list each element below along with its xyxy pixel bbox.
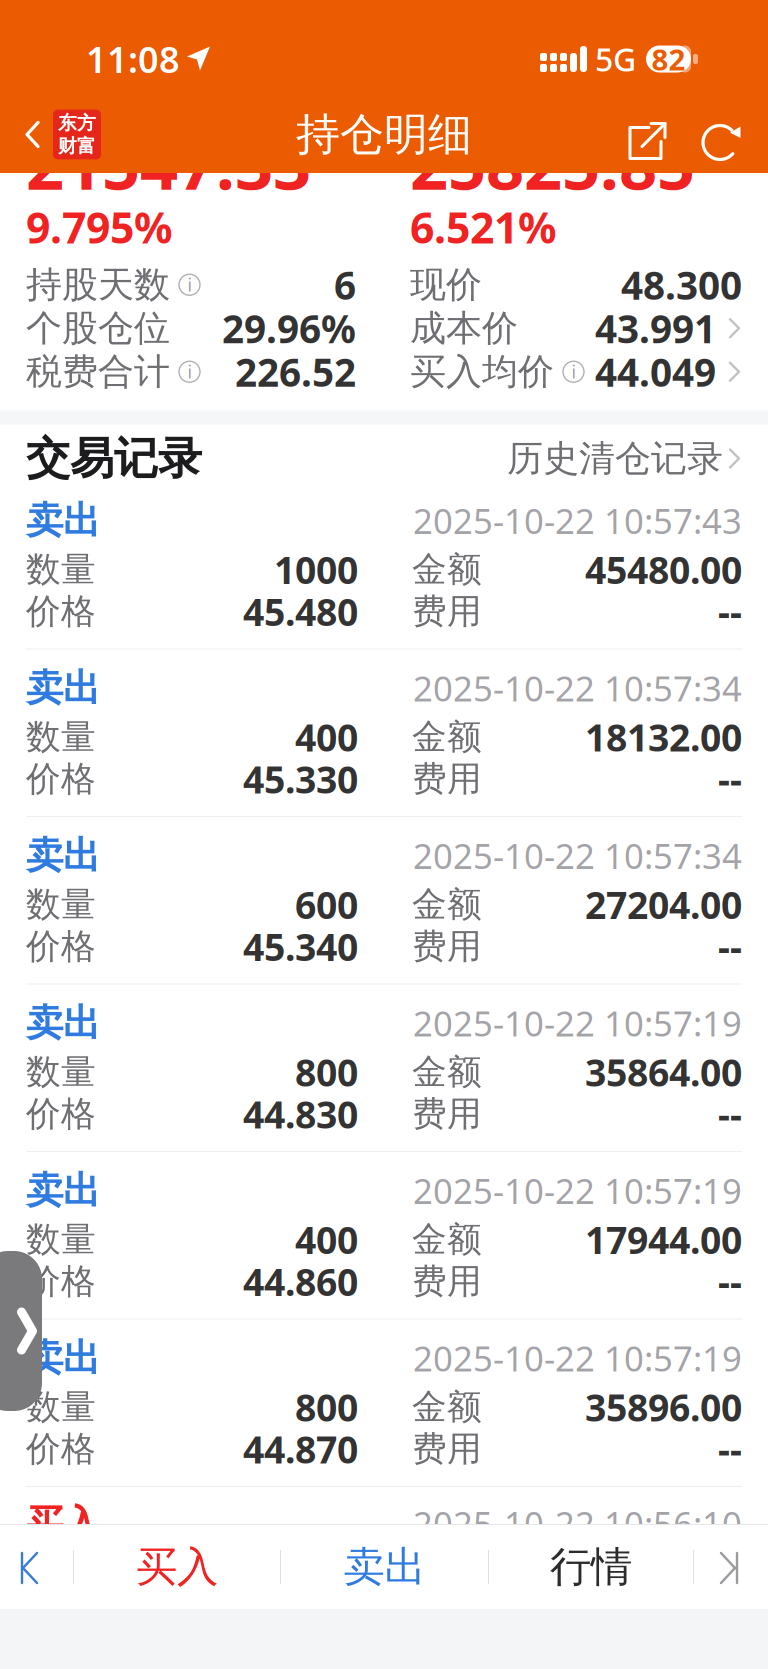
staticText: -- [718, 1424, 742, 1474]
staticText: -- [718, 587, 742, 636]
staticText: 17944.00 [585, 1215, 742, 1264]
staticText: -- [718, 1089, 742, 1139]
staticText: 21547.33 [26, 120, 311, 208]
staticText: 金额 [412, 1218, 482, 1261]
staticText: 35896.00 [585, 1382, 742, 1432]
staticText: 25825.85 [410, 120, 695, 208]
staticText: 金额 [412, 548, 482, 591]
staticText: 6 [334, 259, 356, 310]
button[interactable]: 刷新 [692, 98, 750, 170]
staticText: 财富 [58, 134, 96, 157]
staticText: -- [718, 754, 742, 804]
staticText: i [187, 273, 191, 296]
staticText: 数量 [26, 548, 96, 591]
staticText: 400 [295, 712, 358, 762]
button[interactable]: 分享 [618, 98, 676, 170]
staticText: 卖出 [26, 1168, 100, 1213]
button[interactable]: 历史清仓记录 [507, 424, 742, 493]
staticText: 11:08 [86, 35, 180, 83]
staticText: 2025-10-22 10:57:19 [413, 1167, 742, 1213]
staticText: 价格 [26, 1093, 96, 1135]
staticText: 东方 [58, 112, 96, 134]
staticText: 45.480 [243, 587, 358, 636]
staticText: 持股天数 [26, 263, 170, 307]
staticText: 44.049 [595, 346, 716, 397]
staticText: 金额 [412, 716, 482, 758]
staticText: 历史清仓记录 [507, 436, 723, 481]
staticText: 卖出 [26, 498, 100, 543]
staticText: 2025-10-22 10:57:34 [413, 832, 742, 878]
staticText: 27204.00 [585, 880, 742, 929]
staticText: 35864.00 [585, 1047, 742, 1097]
staticText: -- [718, 1257, 742, 1306]
staticText: 2025-10-22 10:57:43 [413, 497, 742, 543]
staticText: 6.521% [410, 199, 556, 255]
button[interactable]: 返回东方财富 [0, 96, 111, 173]
staticText: 48.300 [621, 259, 742, 310]
staticText: 226.52 [235, 346, 356, 397]
staticText: 卖出 [343, 1542, 425, 1592]
staticText: 400 [295, 1215, 358, 1264]
staticText: 价格 [26, 758, 96, 800]
staticText: 数量 [26, 883, 96, 926]
staticText: -- [718, 922, 742, 971]
staticText: 税费合计 [26, 350, 170, 394]
button[interactable]: 下一只股票 [694, 1525, 768, 1609]
staticText: 交易记录 [26, 431, 202, 485]
staticText: 数量 [26, 716, 96, 758]
staticText: 800 [295, 1382, 358, 1432]
staticText: 价格 [26, 1428, 96, 1470]
staticText: 44.870 [243, 1424, 358, 1474]
staticText: 买入 [136, 1542, 218, 1592]
staticText: 费用 [412, 925, 482, 968]
staticText: 金额 [412, 1386, 482, 1428]
staticText: 2025-10-22 10:57:19 [413, 1335, 742, 1381]
staticText: 800 [295, 1047, 358, 1097]
staticText: 价格 [26, 925, 96, 968]
staticText: 18132.00 [585, 712, 742, 762]
staticText: 1000 [274, 545, 358, 594]
staticText: 成本价 [410, 306, 518, 350]
staticText: 买入均价 [410, 350, 554, 394]
staticText: 5G [595, 38, 636, 80]
staticText: 2025-10-22 10:57:34 [413, 665, 742, 711]
button[interactable]: 上一只股票 [0, 1525, 73, 1609]
staticText: 卖出 [26, 833, 100, 878]
staticText: 45.330 [243, 754, 358, 804]
staticText: 45480.00 [585, 545, 742, 594]
staticText: 9.795% [26, 199, 172, 255]
staticText: 数量 [26, 1218, 96, 1261]
staticText: 金额 [412, 883, 482, 926]
staticText: 卖出 [26, 665, 100, 711]
staticText: 价格 [26, 590, 96, 633]
staticText: 费用 [412, 590, 482, 633]
staticText: i [571, 360, 575, 383]
staticText: 数量 [26, 1051, 96, 1093]
staticText: 44.860 [243, 1257, 358, 1306]
staticText: 29.96% [222, 303, 356, 354]
staticText: 个股仓位 [26, 306, 170, 350]
button[interactable]: 买入 [74, 1525, 280, 1609]
staticText: 费用 [412, 1093, 482, 1135]
staticText: 600 [295, 880, 358, 929]
staticText: 行情 [550, 1542, 632, 1592]
staticText: 2025-10-22 10:57:19 [413, 1000, 742, 1046]
staticText: 2025-10-22 10:56:10 [413, 1500, 742, 1546]
staticText: i [187, 360, 191, 383]
staticText: 费用 [412, 1428, 482, 1470]
staticText: 卖出 [26, 1000, 100, 1046]
button[interactable]: 行情 [489, 1525, 693, 1609]
staticText: 费用 [412, 758, 482, 800]
staticText: 价格 [26, 1260, 96, 1303]
staticText: 金额 [412, 1051, 482, 1093]
staticText: 数量 [26, 1386, 96, 1428]
staticText: 费用 [412, 1260, 482, 1303]
staticText: 45.340 [243, 922, 358, 971]
staticText: 卖出 [26, 1335, 100, 1381]
staticText: 买入 [26, 1501, 100, 1546]
staticText: 现价 [410, 263, 482, 307]
staticText: 43.991 [595, 303, 716, 354]
staticText: 82 [651, 39, 685, 78]
staticText: 持仓明细 [296, 107, 472, 161]
button[interactable]: 卖出 [281, 1525, 488, 1609]
